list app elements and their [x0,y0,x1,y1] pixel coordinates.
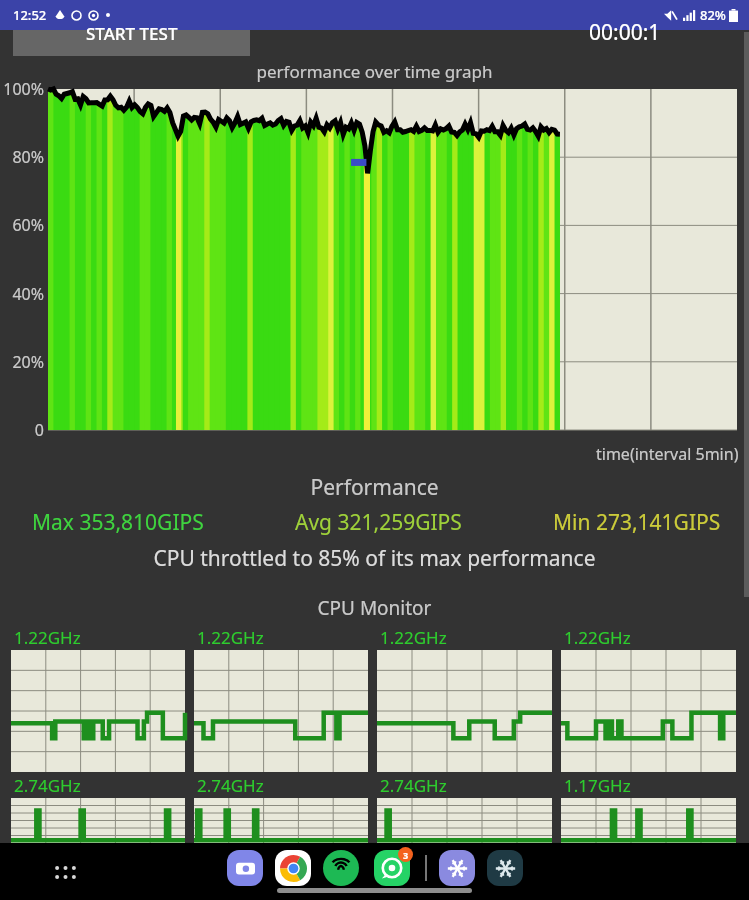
button[interactable]: 1.22GHz [194,626,368,772]
button[interactable]: 2.74GHz [11,774,185,843]
staticText: 60% [0,214,44,236]
button[interactable]: Snowflake app [487,850,523,886]
button[interactable]: 1.22GHz [377,626,552,772]
button[interactable]: WhatsApp [374,850,410,886]
button[interactable]: Chrome [275,850,311,886]
staticText: 2.74GHz [14,774,81,797]
staticText: 3 [403,849,409,861]
staticText: CPU throttled to 85% of its max performa… [0,544,749,573]
staticText: Max 353,810GIPS [32,508,204,537]
button[interactable]: 2.74GHz [377,774,552,843]
staticText: 20% [0,351,44,373]
staticText: time(interval 5min) [596,443,739,465]
staticText: 40% [0,283,44,305]
staticText: 12:52 [13,6,47,24]
button[interactable]: 2.74GHz [194,774,368,843]
staticText: 2.74GHz [380,774,447,797]
staticText: Min 273,141GIPS [553,508,721,537]
button[interactable]: 1.17GHz [561,774,736,843]
staticText: START TEST [86,22,178,45]
staticText: 1.17GHz [564,774,631,797]
staticText: Performance [0,473,749,502]
staticText: 2.74GHz [197,774,264,797]
staticText: 1.22GHz [380,626,447,649]
button[interactable]: Camera [227,850,263,886]
button[interactable]: 1.22GHz [561,626,736,772]
staticText: 1.22GHz [564,626,631,649]
staticText: 1.22GHz [14,626,81,649]
staticText: 80% [0,146,44,168]
staticText: CPU Monitor [0,595,749,621]
staticText: 1.22GHz [197,626,264,649]
staticText: 82% [700,6,726,24]
staticText: 00:00:1 [589,18,661,44]
button[interactable]: Spotify [323,850,359,886]
staticText: 100% [0,78,44,100]
staticText: Avg 321,259GIPS [295,508,462,537]
button[interactable]: Snowflake app [439,850,475,886]
staticText: performance over time graph [0,60,749,83]
button[interactable]: All apps [48,855,82,889]
button[interactable]: 1.22GHz [11,626,185,772]
button[interactable]: START TEST [13,30,250,56]
staticText: 0 [0,419,44,441]
